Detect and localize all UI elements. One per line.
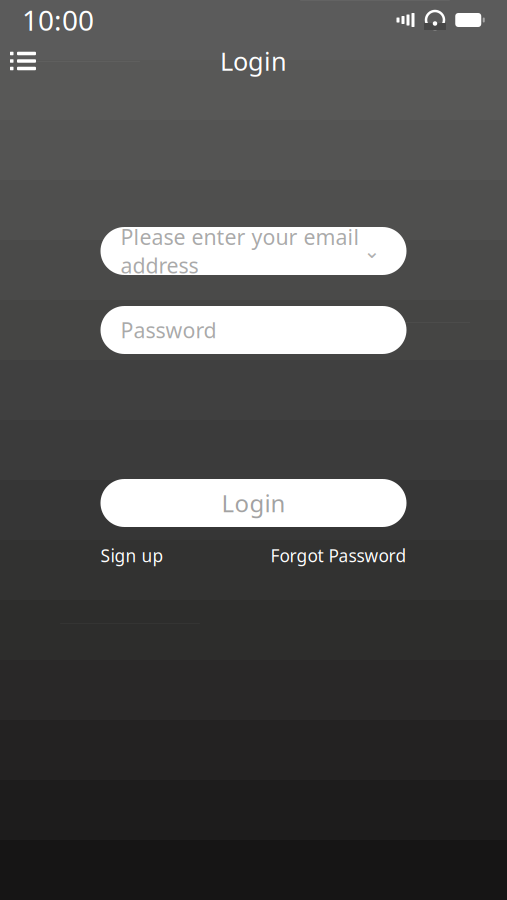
button[interactable]: Login (100, 479, 406, 527)
staticText: ⌄ (363, 240, 380, 262)
staticText: 10:00 (22, 1, 94, 39)
staticText: Sign up (100, 544, 163, 567)
button[interactable]: Sign up (100, 540, 163, 571)
button[interactable]: Please enter your email address (100, 227, 406, 275)
staticText: Please enter your email address (120, 223, 359, 279)
staticText: Login (220, 44, 287, 78)
staticText: Login (221, 487, 285, 519)
button[interactable]: Password (100, 306, 406, 354)
staticText: Password (120, 316, 216, 344)
button[interactable]: Menu (0, 41, 46, 81)
staticText: Forgot Password (270, 544, 406, 567)
button[interactable]: Forgot Password (270, 540, 406, 571)
